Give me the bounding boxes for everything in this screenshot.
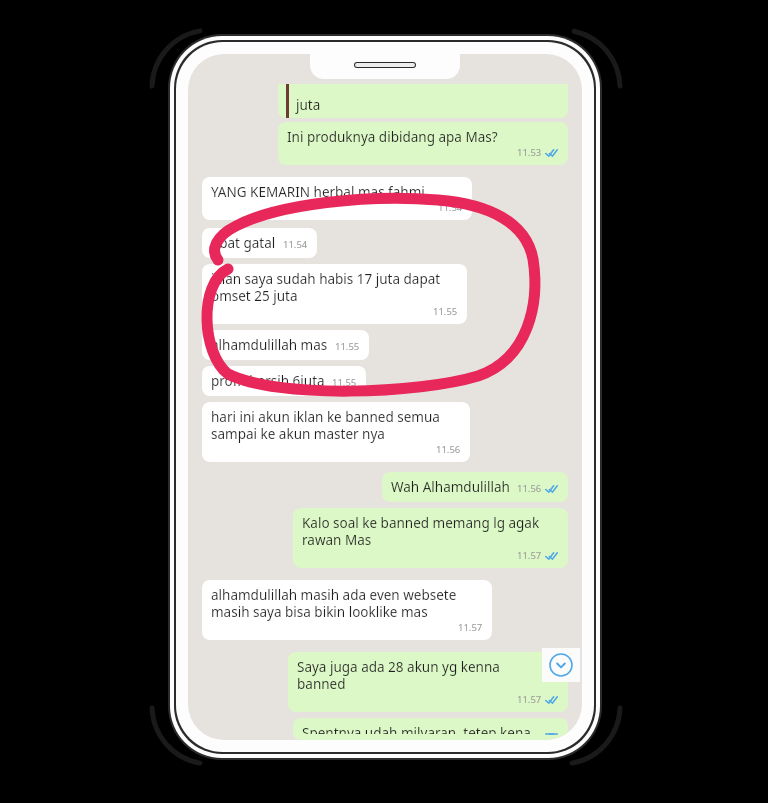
staticText: hari ini akun iklan ke banned semua samp…	[211, 408, 461, 443]
button[interactable]: Wah Alhamdulillah	[382, 472, 568, 502]
staticText: iklan saya sudah habis 17 juta dapat oms…	[211, 270, 458, 305]
staticText: obat gatal	[211, 234, 276, 252]
button[interactable]: Ini produknya dibidang apa Mas?	[278, 122, 568, 165]
staticText: 11.55	[433, 305, 458, 318]
staticText: YANG KEMARIN herbal mas fahmi	[211, 183, 425, 201]
staticText: Saya juga ada 28 akun yg kenna banned	[297, 658, 544, 693]
staticText: juta	[296, 96, 321, 114]
staticText: 11.56	[517, 482, 542, 495]
staticText: 11.55	[335, 340, 360, 353]
staticText: 11.53	[517, 146, 542, 159]
button[interactable]: YANG KEMARIN herbal mas fahmi	[202, 177, 472, 220]
button[interactable]: Saya juga ada 28 akun yg kenna banned	[288, 652, 568, 712]
staticText: Ini produknya dibidang apa Mas?	[287, 128, 498, 146]
button[interactable]: juta	[278, 84, 568, 118]
staticText: 11.56	[436, 443, 461, 456]
staticText: Kalo soal ke banned memang lg agak rawan…	[302, 514, 559, 549]
button[interactable]: alhamdulillah masih ada even websete mas…	[202, 580, 492, 640]
button[interactable]: iklan saya sudah habis 17 juta dapat oms…	[202, 264, 467, 324]
staticText: Spentnya udah milyaran, tetep kena juga	[302, 724, 559, 734]
staticText: 11.55	[332, 376, 357, 389]
staticText: 11.54	[438, 201, 463, 214]
button[interactable]: Kalo soal ke banned memang lg agak rawan…	[293, 508, 568, 568]
button[interactable]: obat gatal	[202, 228, 317, 258]
staticText: alhamdulillah masih ada even websete mas…	[211, 586, 483, 621]
button[interactable]: Scroll to bottom	[542, 648, 580, 682]
staticText: profit bersih 6juta	[211, 372, 325, 390]
button[interactable]: hari ini akun iklan ke banned semua samp…	[202, 402, 470, 462]
button[interactable]: Spentnya udah milyaran, tetep kena juga	[293, 718, 568, 740]
button[interactable]: alhamdulillah mas	[202, 330, 369, 360]
staticText: 11.54	[283, 238, 308, 251]
staticText: 11.57	[458, 621, 483, 634]
staticText: 11.57	[517, 693, 542, 706]
staticText: alhamdulillah mas	[211, 336, 328, 354]
staticText: 11.57	[517, 549, 542, 562]
button[interactable]: profit bersih 6juta	[202, 366, 366, 396]
staticText: Wah Alhamdulillah	[391, 478, 510, 496]
